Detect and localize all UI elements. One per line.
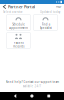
button[interactable]: Back [14,94,16,98]
staticText: available 24/7 [22,84,41,88]
staticText: Schedule Appointment [9,23,28,30]
staticText: Updated today [40,10,60,14]
staticText: HELP [56,5,62,8]
button[interactable]: Recent apps [47,95,50,97]
button[interactable]: Find a Specialist [33,14,57,30]
staticText: Select a service [3,10,23,14]
button[interactable]: Home [30,94,33,98]
staticText: Find a Specialist [39,23,51,30]
staticText: Patient Records [13,41,24,48]
button[interactable]: HELP [56,5,64,8]
staticText: Partner Portal [8,4,35,9]
button[interactable]: Patient Records [6,32,30,48]
button[interactable]: Schedule Appointment [6,14,30,30]
staticText: Need help? Contact our support team [5,80,58,84]
button[interactable]: Back [2,4,8,9]
